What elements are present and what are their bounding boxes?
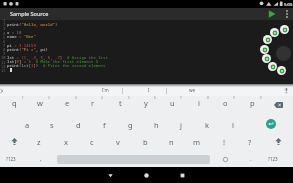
button[interactable]: g (121, 117, 139, 133)
button[interactable] (262, 54, 271, 63)
staticText: g (128, 120, 133, 130)
staticText: 11 (1, 60, 6, 65)
staticText: n (169, 137, 174, 147)
button[interactable]: d (69, 117, 87, 133)
button[interactable]: v (109, 134, 127, 150)
button[interactable]: q (5, 95, 23, 111)
staticText: 2 (3, 22, 6, 27)
staticText: 2 (48, 96, 50, 100)
staticText: m (193, 137, 201, 147)
staticText: Sample Source (10, 10, 49, 17)
button[interactable]: p (243, 95, 261, 111)
button[interactable]: i (190, 95, 208, 111)
staticText: f (103, 120, 106, 130)
button[interactable] (102, 167, 119, 183)
button[interactable] (268, 62, 277, 71)
button[interactable] (268, 97, 288, 112)
button[interactable]: j (172, 117, 190, 133)
button[interactable]: r (84, 95, 102, 111)
button[interactable] (260, 45, 269, 54)
staticText: a (25, 120, 30, 130)
staticText: 9 (233, 96, 235, 100)
staticText: w (37, 98, 43, 108)
staticText: 13 (1, 68, 6, 73)
button[interactable] (280, 25, 289, 34)
staticText: 4 (101, 96, 103, 100)
staticText: print("Pi =", pi) (7, 47, 48, 52)
button[interactable] (5, 134, 23, 149)
button[interactable]: b (136, 134, 154, 150)
staticText: 1 (22, 96, 24, 100)
staticText: q (12, 98, 17, 108)
button[interactable]: z (30, 134, 48, 150)
button[interactable] (174, 167, 191, 183)
button[interactable] (266, 119, 276, 129)
button[interactable]: n (162, 134, 180, 150)
staticText: name = "Bee" (7, 34, 36, 39)
button[interactable]: w (31, 95, 49, 111)
staticText: z (37, 137, 41, 147)
button[interactable]: o (216, 95, 234, 111)
button[interactable]: ?123 (264, 152, 282, 166)
button[interactable]: f (95, 117, 113, 133)
button[interactable]: x (57, 134, 75, 150)
staticText: o (223, 98, 228, 108)
staticText: 5:05 (284, 1, 293, 7)
staticText: d (76, 120, 81, 130)
button[interactable] (269, 134, 287, 149)
staticText: v (116, 137, 120, 147)
staticText: 8 (3, 47, 6, 52)
staticText: print(lst[1]) # Print the second element (7, 63, 106, 68)
button[interactable]: y (137, 95, 155, 111)
button[interactable]: ! (215, 134, 233, 150)
staticText: i (198, 98, 200, 108)
button[interactable] (281, 8, 293, 20)
button[interactable]: m (188, 134, 206, 150)
button[interactable] (217, 152, 233, 166)
staticText: x (64, 137, 68, 147)
staticText: 8 (207, 96, 209, 100)
button[interactable]: t (111, 95, 129, 111)
button[interactable] (138, 167, 155, 183)
button[interactable] (263, 35, 272, 44)
staticText: p (250, 98, 255, 108)
button[interactable]: u (163, 95, 181, 111)
staticText: u (170, 98, 175, 108)
button[interactable] (276, 46, 291, 61)
staticText: 9 (3, 51, 6, 56)
button[interactable] (277, 66, 286, 75)
button[interactable]: a (18, 117, 36, 133)
button[interactable]: I'm (96, 84, 114, 96)
staticText: ?123 (6, 156, 16, 162)
staticText: j (180, 120, 182, 130)
button[interactable]: ? (241, 134, 259, 150)
button[interactable]: I (140, 84, 157, 96)
button[interactable]: we (183, 84, 201, 96)
button[interactable]: k (198, 117, 216, 133)
button[interactable]: l (224, 117, 242, 133)
staticText: 3 (75, 96, 77, 100)
button[interactable]: h (147, 117, 165, 133)
staticText: y (144, 98, 148, 108)
staticText: . (250, 155, 252, 163)
staticText: ?123 (268, 156, 278, 162)
button[interactable] (270, 28, 279, 37)
staticText: lst = [1, -3, 5, 6, -7] # Assign the lis… (7, 55, 108, 60)
staticText: I'm (102, 87, 109, 93)
button[interactable]: s (43, 117, 61, 133)
staticText: 3 (3, 26, 6, 31)
button[interactable]: ?123 (2, 152, 20, 166)
staticText: 6 (3, 39, 6, 44)
staticText: I (148, 87, 150, 93)
button[interactable]: , (32, 151, 50, 167)
staticText: 12 (1, 64, 6, 69)
staticText: e (65, 98, 70, 108)
staticText: s (50, 120, 54, 130)
button[interactable]: c (83, 134, 101, 150)
staticText: r (91, 98, 95, 108)
button[interactable]: e (58, 95, 76, 111)
staticText: 6 (154, 96, 156, 100)
button[interactable] (264, 8, 279, 20)
